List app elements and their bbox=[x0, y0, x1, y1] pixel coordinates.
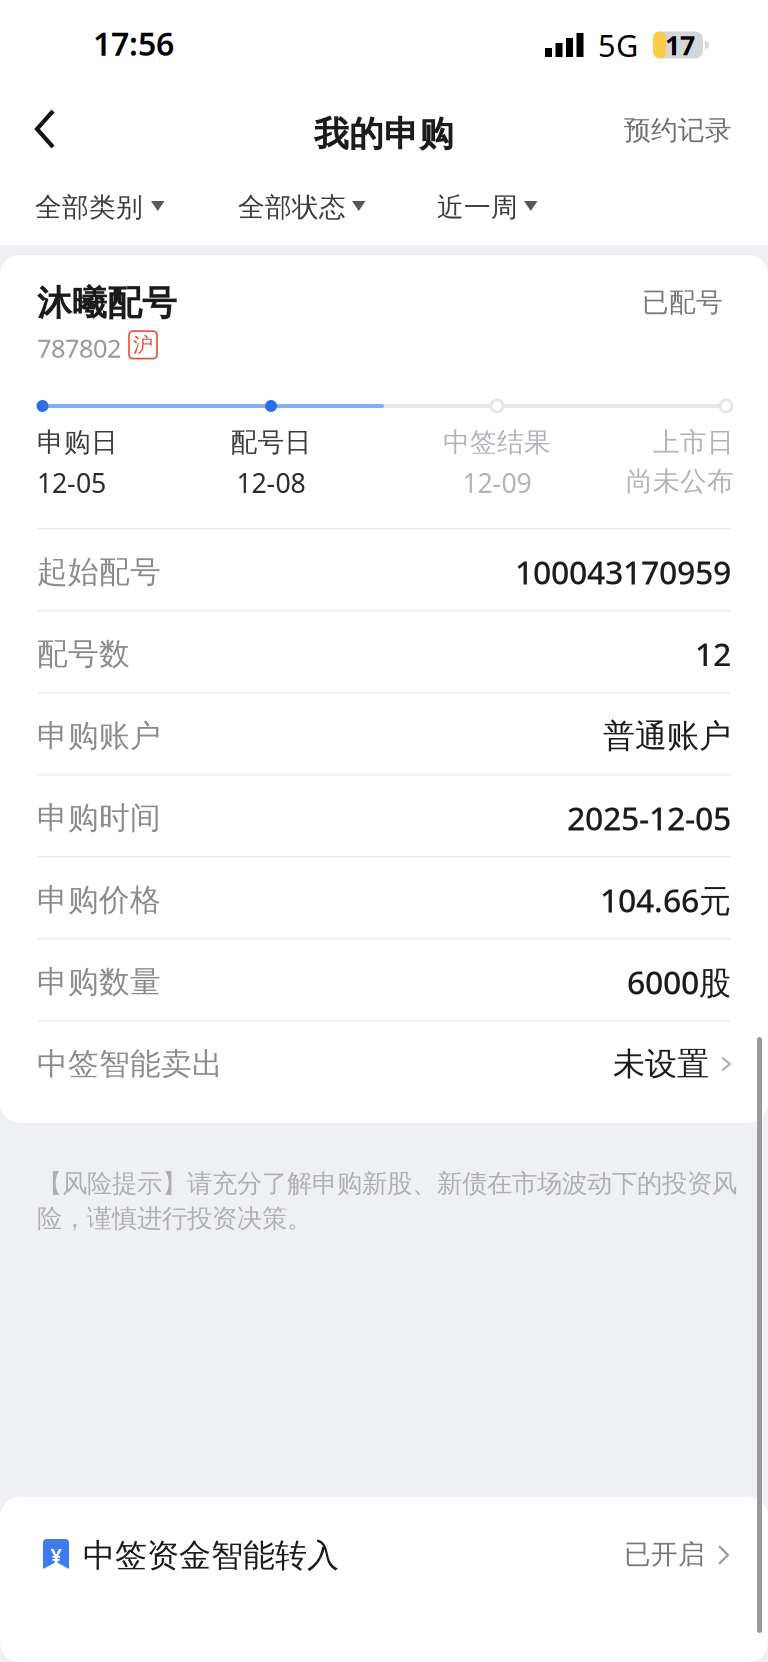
staticText: 申购账户 bbox=[37, 717, 161, 755]
button[interactable]: 近一周 bbox=[437, 179, 546, 235]
button[interactable]: 全部类别 bbox=[35, 179, 173, 235]
staticText: 6000股 bbox=[627, 961, 731, 1003]
staticText: 配号日 bbox=[230, 426, 311, 459]
staticText: 申购数量 bbox=[37, 963, 161, 1001]
staticText: 12-09 bbox=[462, 465, 531, 500]
staticText: 787802 bbox=[37, 331, 121, 365]
staticText: 中签结果 bbox=[443, 426, 551, 459]
button[interactable]: 返回 bbox=[9, 97, 81, 161]
staticText: 12-05 bbox=[37, 465, 106, 500]
staticText: 100043170959 bbox=[515, 551, 731, 593]
staticText: 全部类别 bbox=[35, 191, 143, 224]
staticText: 普通账户 bbox=[603, 716, 731, 756]
staticText: 申购价格 bbox=[37, 881, 161, 919]
staticText: 12 bbox=[695, 633, 731, 675]
button[interactable]: 中签智能卖出 bbox=[0, 1020, 768, 1102]
staticText: 配号数 bbox=[37, 635, 130, 673]
staticText: 中签智能卖出 bbox=[37, 1045, 223, 1083]
staticText: 17:56 bbox=[93, 22, 174, 64]
button[interactable]: 全部状态 bbox=[238, 179, 374, 235]
staticText: 起始配号 bbox=[37, 553, 161, 591]
staticText: 申购日 bbox=[37, 426, 118, 459]
staticText: 2025-12-05 bbox=[567, 797, 731, 839]
staticText: 已配号 bbox=[642, 286, 723, 319]
staticText: 104.66元 bbox=[600, 879, 731, 921]
staticText: 12-08 bbox=[236, 465, 305, 500]
staticText: 沐曦配号 bbox=[37, 282, 177, 325]
staticText: 5G bbox=[598, 25, 638, 65]
staticText: 预约记录 bbox=[624, 114, 732, 147]
staticText: 中签资金智能转入 bbox=[83, 1536, 339, 1575]
staticText: 【风险提示】请充分了解申购新股、新债在市场波动下的投资风险，谨慎进行投资决策。 bbox=[37, 1168, 737, 1234]
staticText: 全部状态 bbox=[238, 191, 346, 224]
staticText: 沪 bbox=[133, 332, 153, 357]
staticText: ¥ bbox=[50, 1542, 61, 1569]
staticText: 未设置 bbox=[613, 1044, 709, 1084]
staticText: 申购时间 bbox=[37, 799, 161, 837]
staticText: 尚未公布 bbox=[626, 465, 734, 498]
staticText: 我的申购 bbox=[314, 113, 454, 156]
button[interactable]: ¥ bbox=[0, 1497, 768, 1662]
button[interactable]: 预约记录 bbox=[604, 96, 752, 165]
staticText: 17 bbox=[665, 27, 695, 63]
staticText: 已开启 bbox=[624, 1538, 705, 1571]
staticText: 近一周 bbox=[437, 191, 518, 224]
staticText: 上市日 bbox=[653, 426, 734, 459]
